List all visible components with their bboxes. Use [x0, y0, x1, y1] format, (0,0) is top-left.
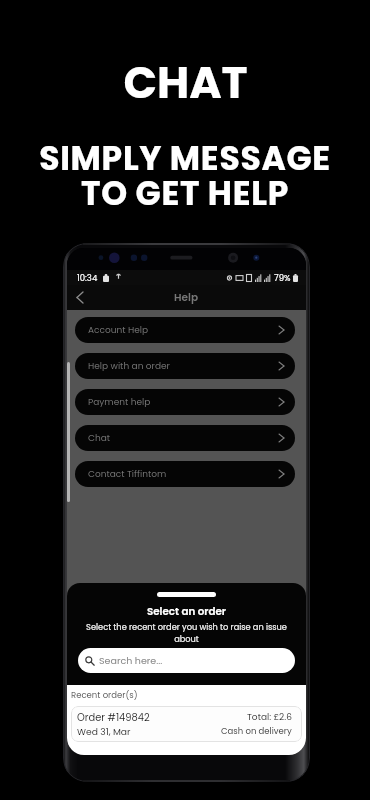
staticText: Order #149842 — [77, 711, 150, 725]
button[interactable]: Account Help — [75, 317, 295, 343]
staticText: Select an order — [147, 604, 226, 618]
button[interactable]: Search here... — [78, 648, 295, 673]
staticText: CHAT — [123, 52, 248, 114]
button[interactable]: Help with an order — [75, 353, 295, 379]
button[interactable]: Contact Tiffintom — [75, 461, 295, 487]
staticText: Help — [174, 290, 199, 305]
button[interactable]: Order #149842 — [71, 706, 302, 742]
staticText: Search here... — [99, 654, 163, 667]
staticText: Account Help — [88, 324, 149, 337]
staticText: Select the recent order you wish to rais… — [76, 621, 297, 645]
staticText: Contact Tiffintom — [88, 468, 167, 481]
staticText: 79% — [274, 272, 291, 284]
staticText: 10:34 — [77, 272, 98, 284]
button[interactable]: Back — [67, 285, 93, 310]
staticText: Total: £2.6 — [247, 711, 292, 724]
button[interactable]: Chat — [75, 425, 295, 451]
staticText: Wed 31, Mar — [77, 725, 131, 738]
staticText: Recent order(s) — [71, 689, 138, 701]
staticText: Payment help — [88, 396, 151, 409]
staticText: Cash on delivery — [221, 725, 292, 737]
staticText: SIMPLY MESSAGE TO GET HELP — [39, 135, 331, 216]
button[interactable]: Payment help — [75, 389, 295, 415]
staticText: Chat — [88, 432, 111, 445]
staticText: Help with an order — [88, 360, 170, 373]
